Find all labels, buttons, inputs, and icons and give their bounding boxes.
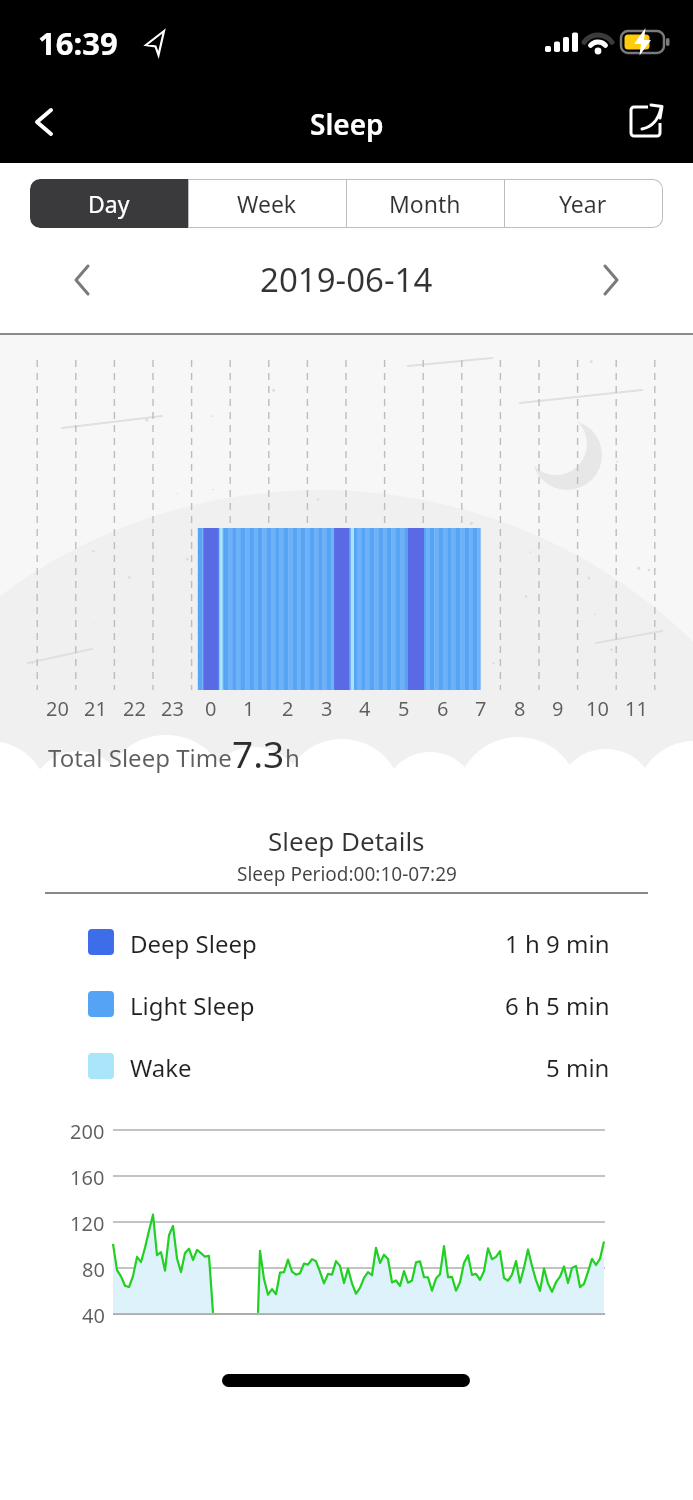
button[interactable]: Week xyxy=(188,179,346,228)
button[interactable] xyxy=(58,255,108,305)
staticText: 7 xyxy=(475,695,487,722)
staticText: 7.3 xyxy=(232,728,285,778)
button[interactable] xyxy=(585,255,635,305)
staticText: 21 xyxy=(84,695,107,722)
staticText: 3 xyxy=(321,695,333,722)
button[interactable]: Month xyxy=(346,179,504,228)
staticText: Day xyxy=(88,188,130,219)
staticText: 2 xyxy=(282,695,294,722)
staticText: 0 xyxy=(205,695,217,722)
staticText: 8 xyxy=(514,695,526,722)
staticText: Deep Sleep xyxy=(130,927,257,960)
staticText: 20 xyxy=(46,695,69,722)
staticText: 4 xyxy=(359,695,371,722)
button[interactable]: Year xyxy=(504,179,662,228)
staticText: 11 xyxy=(625,695,648,722)
staticText: 10 xyxy=(586,695,609,722)
staticText: Sleep Period:00:10-07:29 xyxy=(237,861,457,887)
staticText: 5 xyxy=(398,695,410,722)
staticText: Total Sleep Time xyxy=(48,741,232,774)
staticText: 1 xyxy=(243,695,255,722)
staticText: Sleep Details xyxy=(268,823,425,858)
staticText: 5 min xyxy=(546,1051,610,1084)
staticText: h xyxy=(285,741,300,774)
button[interactable]: Day xyxy=(30,179,188,228)
staticText: 120 xyxy=(70,1210,105,1237)
staticText: 200 xyxy=(70,1118,105,1145)
staticText: Year xyxy=(559,188,607,219)
staticText: 23 xyxy=(161,695,184,722)
staticText: 6 h 5 min xyxy=(505,989,610,1022)
staticText: 2019-06-14 xyxy=(260,257,433,302)
staticText: 1 h 9 min xyxy=(505,927,610,960)
button[interactable] xyxy=(20,95,75,153)
staticText: 6 xyxy=(437,695,449,722)
staticText: 160 xyxy=(70,1164,105,1191)
staticText: 9 xyxy=(552,695,564,722)
staticText: Sleep xyxy=(310,105,384,143)
staticText: 16:39 xyxy=(38,22,118,64)
staticText: 22 xyxy=(123,695,146,722)
staticText: Light Sleep xyxy=(130,989,255,1022)
button[interactable] xyxy=(615,93,677,155)
staticText: Wake xyxy=(130,1051,192,1084)
staticText: 40 xyxy=(82,1302,105,1329)
staticText: 80 xyxy=(82,1256,105,1283)
staticText: Month xyxy=(389,188,461,219)
staticText: Week xyxy=(237,188,297,219)
